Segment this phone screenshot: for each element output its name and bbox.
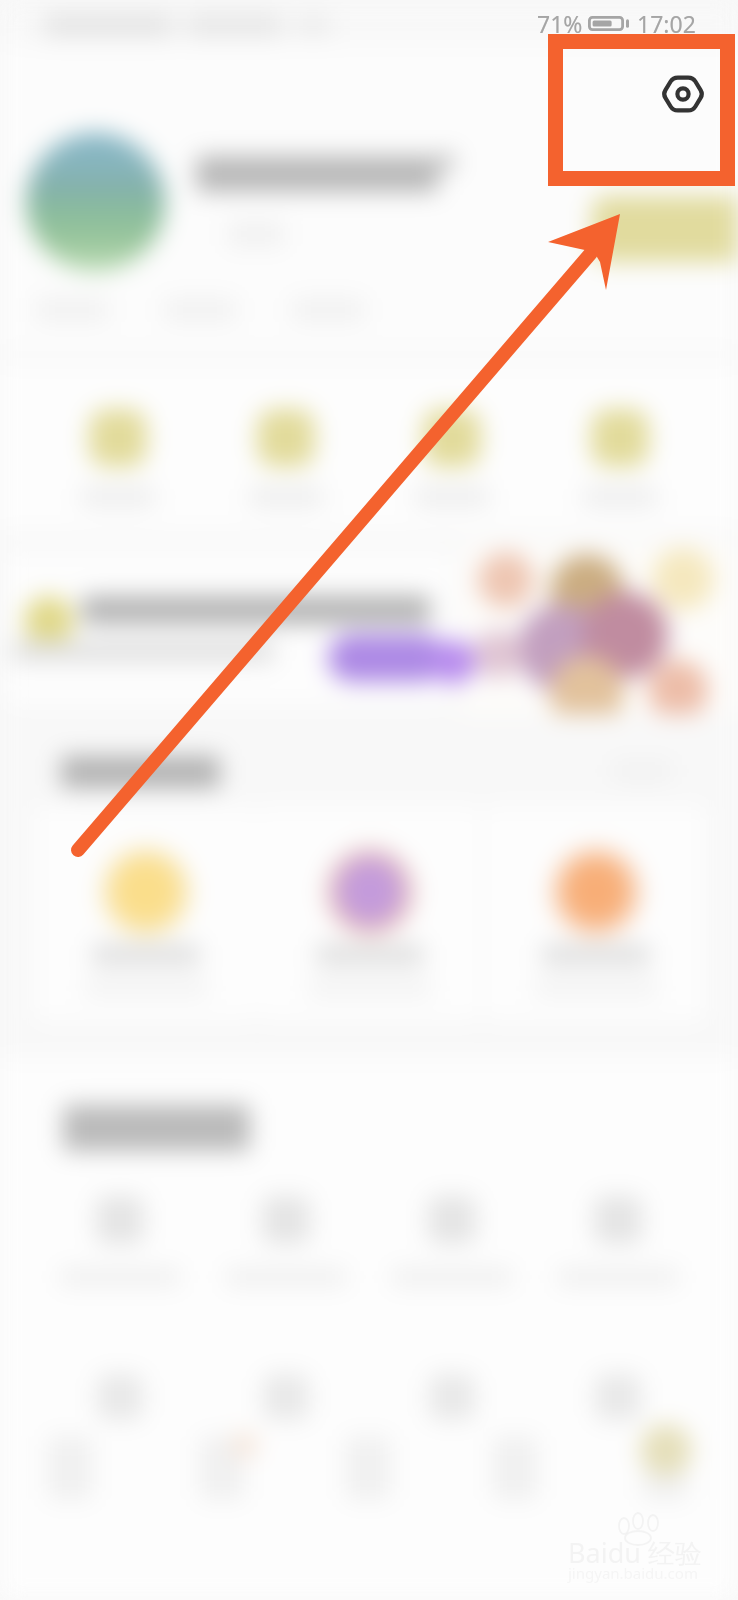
staticText: 17:02 <box>637 8 696 39</box>
button[interactable]: Settings <box>647 58 719 130</box>
staticText: Baidu 经验 <box>568 1534 702 1571</box>
staticText: 71% <box>537 8 583 39</box>
